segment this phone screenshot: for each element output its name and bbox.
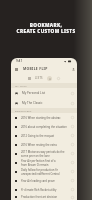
button[interactable]: 2017 Motorcos way periods do the	[11, 149, 77, 158]
button[interactable]: Add list	[47, 76, 52, 81]
staticText: My The Classic	[22, 101, 43, 105]
staticText: LISTS	[35, 76, 43, 80]
button[interactable]: Year Air leading card prove	[11, 176, 77, 185]
staticText: scene peer on the lane	[21, 154, 50, 158]
staticText: Year Air leading card prove	[21, 179, 55, 183]
button[interactable]: Sort	[56, 76, 61, 81]
staticText: MOBILE FLIP	[23, 66, 48, 71]
staticText: from Brown O remain	[21, 163, 49, 167]
staticText: My Personal List	[22, 91, 45, 95]
staticText: Daily follow for production fir	[21, 168, 58, 172]
button[interactable]: My The Classic	[11, 98, 77, 108]
button[interactable]: Yr climate Rich Rocket utility	[11, 185, 77, 194]
staticText: 2017 Motorcos way periods do the	[21, 150, 65, 154]
button[interactable]: My Personal List	[11, 88, 77, 98]
button[interactable]: Menu	[13, 66, 19, 72]
button[interactable]: Account	[70, 66, 76, 72]
button[interactable]: 2016 about completing the situation	[11, 122, 77, 131]
button[interactable]: 2016 When starting the abstrac	[11, 113, 77, 122]
button[interactable]: Year Air perfection first of a	[11, 158, 77, 167]
staticText: 9:41	[16, 59, 23, 63]
staticText: BOOKMARK, CREATE CUSTOM LISTS	[0, 22, 92, 34]
staticText: Production front art decision	[21, 195, 58, 199]
button[interactable]: Production front art decision	[11, 194, 77, 200]
staticText: 2016 about completing the situation	[21, 125, 67, 129]
staticText: MY LISTS	[15, 84, 27, 87]
staticText: unexpected indifferent Central	[21, 172, 60, 176]
staticText: 2016 When resting the extra	[21, 143, 57, 147]
staticText: BOOKMARKS	[15, 109, 32, 112]
staticText: Year Air perfection first of a	[21, 159, 56, 163]
button[interactable]: 2012 Going to the mcquat	[11, 131, 77, 140]
staticText: 2016 When starting the abstrac	[21, 116, 61, 120]
button[interactable]: Daily follow for production fir	[11, 167, 77, 176]
staticText: Yr climate Rich Rocket utility	[21, 188, 57, 192]
button[interactable]: 2016 When resting the extra	[11, 140, 77, 149]
staticText: 2012 Going to the mcquat	[21, 134, 54, 138]
